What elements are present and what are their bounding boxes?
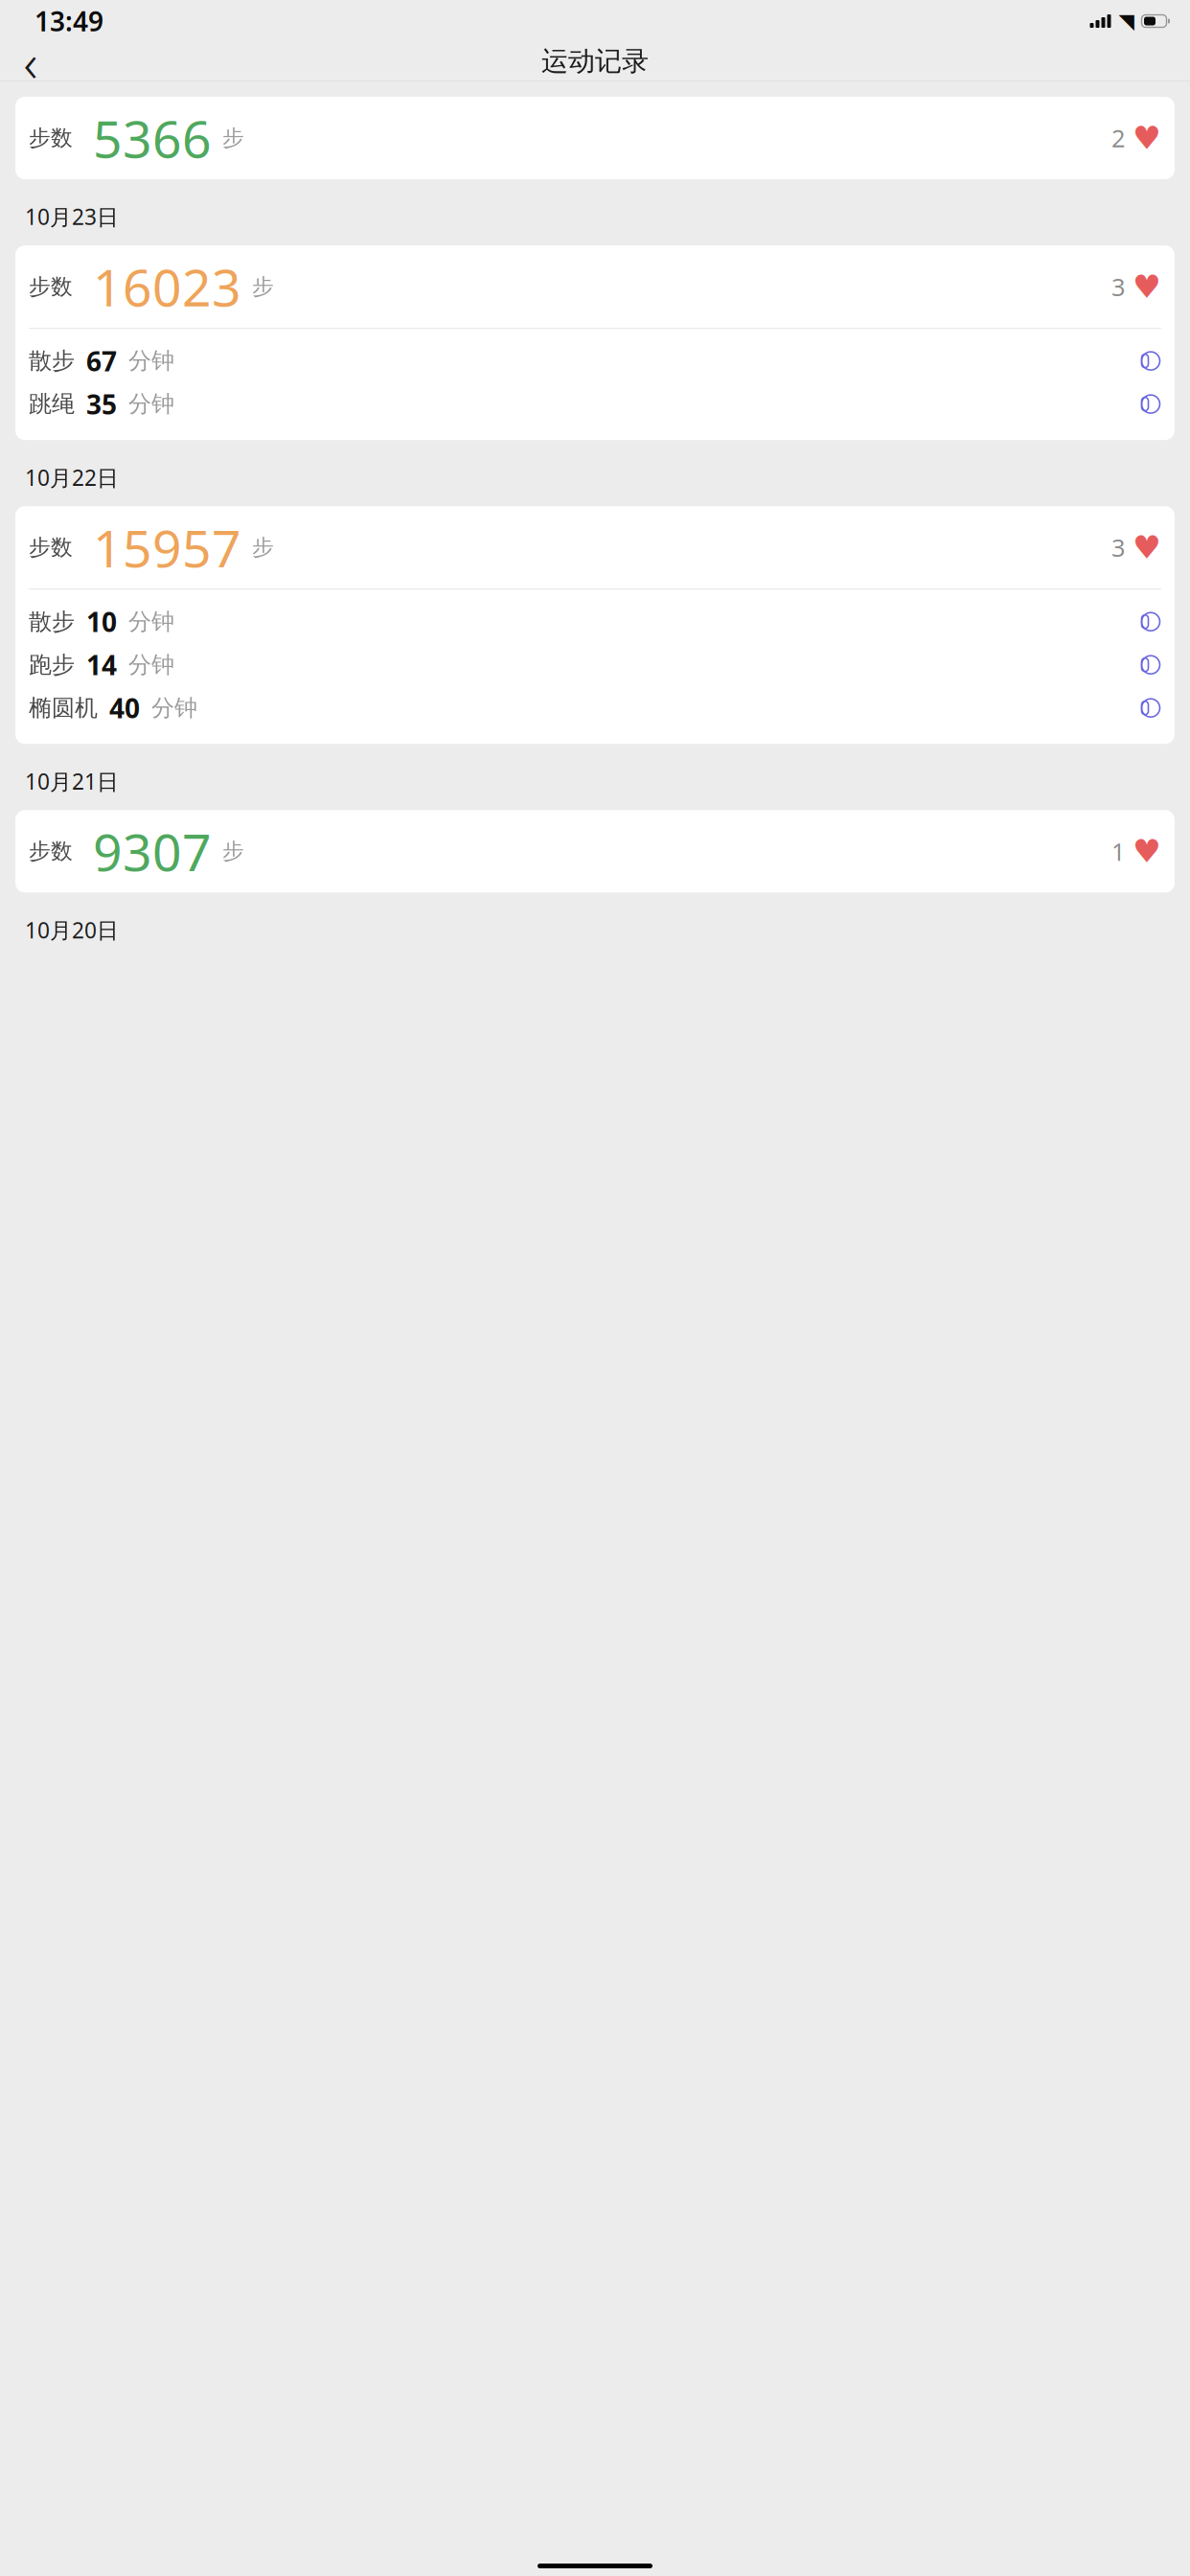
staticText: 16023 — [93, 253, 241, 321]
staticText: 14 — [86, 647, 117, 683]
staticText: 分钟 — [151, 694, 197, 722]
staticText: 步数 — [29, 534, 73, 561]
staticText: 跳绳 — [29, 390, 75, 418]
staticText: 10月23日 — [25, 202, 119, 231]
staticText: 67 — [86, 343, 117, 379]
staticText: ♥ — [1133, 529, 1161, 566]
staticText: 步数 — [29, 838, 73, 865]
button[interactable]: 步数 — [15, 810, 1175, 892]
staticText: 散步 — [29, 608, 75, 636]
staticText: 10 — [86, 604, 117, 639]
staticText: 椭圆机 — [29, 694, 98, 722]
staticText: 15957 — [93, 513, 241, 581]
staticText: 1 — [1111, 835, 1125, 867]
staticText: ♥ — [1133, 833, 1161, 869]
staticText: ♥ — [1133, 120, 1161, 156]
staticText: 步 — [222, 125, 244, 151]
staticText: 9307 — [93, 817, 212, 885]
staticText: 分钟 — [128, 608, 174, 636]
staticText: ◥ — [1119, 9, 1134, 33]
staticText: 步 — [222, 838, 244, 865]
staticText: 3 — [1111, 271, 1125, 303]
button[interactable]: 步数 — [15, 97, 1175, 179]
staticText: 跑步 — [29, 651, 75, 679]
staticText: 40 — [109, 690, 140, 726]
staticText: 分钟 — [128, 651, 174, 679]
staticText: 10月20日 — [25, 915, 119, 944]
staticText: 13:49 — [34, 3, 103, 39]
staticText: 步 — [252, 534, 274, 561]
staticText: 步 — [252, 273, 274, 300]
staticText: 5366 — [93, 104, 212, 172]
staticText: 步数 — [29, 125, 73, 151]
staticText: 步数 — [29, 273, 73, 300]
staticText: 分钟 — [128, 390, 174, 418]
staticText: 散步 — [29, 347, 75, 375]
button[interactable]: 步数 — [15, 245, 1175, 440]
staticText: 10月21日 — [25, 767, 119, 796]
staticText: 分钟 — [128, 347, 174, 375]
staticText: 运动记录 — [541, 45, 649, 78]
button[interactable]: 步数 — [15, 506, 1175, 744]
staticText: 2 — [1111, 122, 1125, 154]
staticText: ♥ — [1133, 269, 1161, 305]
staticText: ‹ — [23, 26, 38, 97]
button[interactable]: 返回 — [6, 40, 56, 82]
staticText: 3 — [1111, 531, 1125, 563]
staticText: 35 — [86, 386, 117, 422]
staticText: 10月22日 — [25, 463, 119, 492]
